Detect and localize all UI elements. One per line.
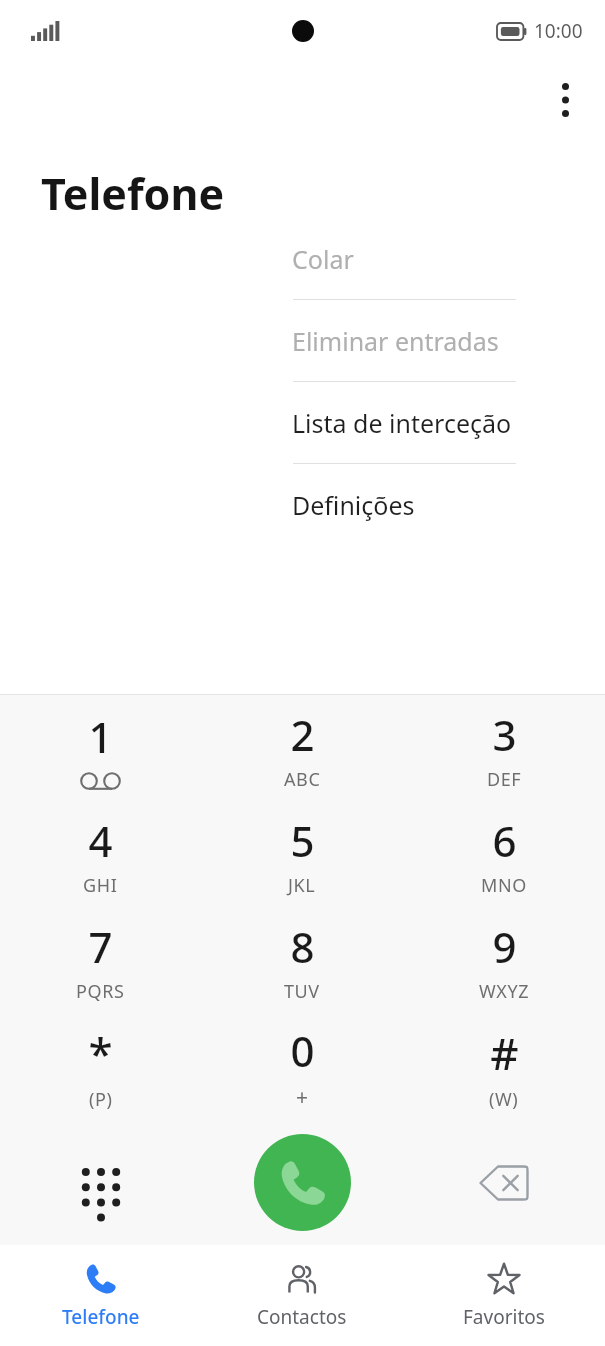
staticText: Lista de interceção (292, 406, 512, 440)
staticText: ABC (284, 767, 321, 792)
staticText: 7 (88, 918, 113, 975)
staticText: # (490, 1023, 519, 1083)
button[interactable]: 0 (201, 1014, 403, 1120)
staticText: 6 (492, 812, 517, 869)
staticText: Definições (292, 488, 415, 522)
button[interactable]: 7 (0, 908, 201, 1014)
staticText: JKL (288, 873, 316, 898)
staticText: PQRS (76, 979, 125, 1004)
staticText: 4 (88, 812, 113, 869)
button[interactable]: 6 (403, 802, 605, 908)
staticText: 10:00 (534, 18, 583, 44)
staticText: 3 (492, 706, 517, 763)
staticText: Contactos (257, 1304, 347, 1330)
staticText: TUV (284, 979, 320, 1004)
staticText: 9 (492, 918, 517, 975)
staticText: Telefone (41, 164, 225, 223)
button[interactable]: # (403, 1014, 605, 1120)
staticText: Favoritos (463, 1304, 545, 1330)
staticText: 2 (290, 706, 315, 763)
button[interactable]: 1 (0, 695, 201, 802)
staticText: DEF (487, 767, 522, 792)
staticText: 5 (290, 812, 315, 869)
staticText: (W) (489, 1087, 519, 1112)
staticText: 0 (290, 1022, 315, 1079)
button[interactable]: Call (254, 1134, 351, 1231)
button[interactable]: Favoritos (403, 1245, 605, 1346)
button[interactable]: 2 (201, 695, 403, 802)
button[interactable]: * (0, 1014, 201, 1120)
staticText: Eliminar entradas (292, 324, 499, 358)
button[interactable]: Hide keypad (0, 1120, 201, 1245)
button[interactable]: More options (537, 72, 593, 128)
button[interactable]: 8 (201, 908, 403, 1014)
button[interactable]: 4 (0, 802, 201, 908)
staticText: MNO (481, 873, 527, 898)
staticText: WXYZ (479, 979, 530, 1004)
staticText: 8 (290, 918, 315, 975)
staticText: GHI (83, 873, 118, 898)
staticText: Colar (292, 242, 354, 276)
staticText: * (88, 1023, 113, 1083)
button[interactable]: Backspace (403, 1120, 605, 1245)
staticText: (P) (89, 1087, 113, 1112)
button[interactable]: 3 (403, 695, 605, 802)
button[interactable]: Telefone (0, 1245, 201, 1346)
button[interactable]: Lista de interceção (264, 382, 545, 463)
button[interactable]: Definições (264, 464, 545, 545)
staticText: + (296, 1083, 309, 1112)
button[interactable]: Contactos (201, 1245, 403, 1346)
staticText: 1 (88, 708, 113, 765)
staticText: Telefone (62, 1304, 140, 1330)
button[interactable]: 5 (201, 802, 403, 908)
button[interactable]: 9 (403, 908, 605, 1014)
